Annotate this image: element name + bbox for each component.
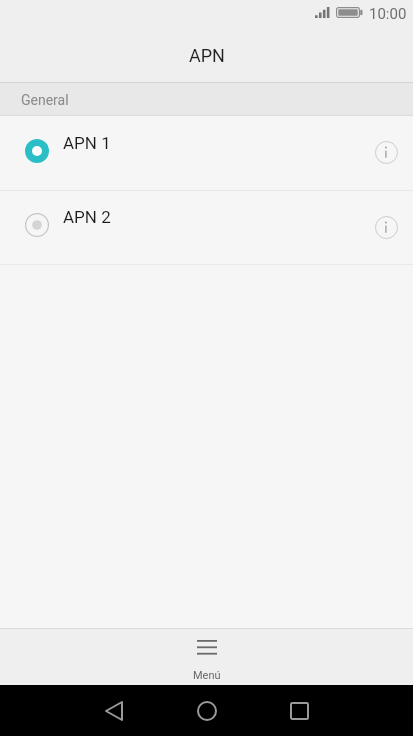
button[interactable]: Home xyxy=(183,687,231,735)
button[interactable]: Recent apps xyxy=(275,687,323,735)
staticText: General xyxy=(21,92,69,108)
button[interactable]: APN 2 xyxy=(0,191,413,264)
staticText: 10:00 xyxy=(369,5,407,23)
button[interactable]: Menú xyxy=(167,629,247,685)
button[interactable]: Back xyxy=(90,687,138,735)
staticText: APN 1 xyxy=(63,133,111,153)
staticText: Menú xyxy=(193,669,221,682)
staticText: APN xyxy=(189,45,225,66)
button[interactable]: APN 1 xyxy=(0,116,413,190)
button[interactable]: Details for APN 2 xyxy=(362,203,410,251)
button[interactable]: Details for APN 1 xyxy=(362,128,410,176)
staticText: APN 2 xyxy=(63,207,111,227)
